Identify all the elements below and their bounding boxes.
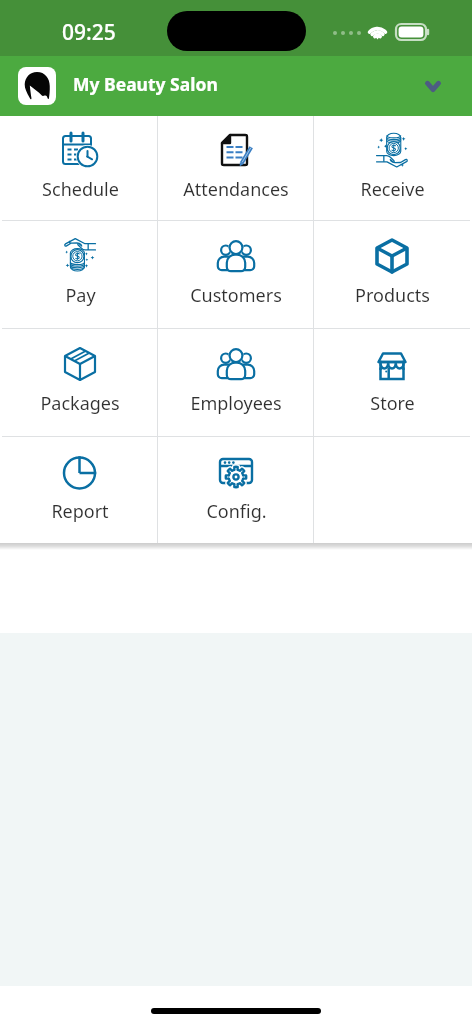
staticText: Receive [360,177,425,202]
button[interactable]: Customers [158,221,314,328]
staticText: My Beauty Salon [73,72,218,96]
staticText: Products [355,283,430,308]
button[interactable]: Expand menu [413,66,453,106]
button[interactable]: Report [2,437,158,543]
button[interactable]: Pay [2,221,158,328]
staticText: Store [370,391,415,416]
button[interactable]: Receive [314,116,470,220]
staticText: Schedule [42,177,119,202]
button[interactable]: Store [314,329,470,436]
button[interactable]: Employees [158,329,314,436]
staticText: Customers [190,283,282,308]
button[interactable]: Products [314,221,470,328]
staticText: Attendances [183,177,289,202]
button[interactable]: Schedule [2,116,158,220]
button[interactable]: Attendances [158,116,314,220]
button[interactable]: Packages [2,329,158,436]
button[interactable]: Config. [158,437,314,543]
staticText: Pay [65,283,96,308]
staticText: Report [51,499,109,524]
staticText: Config. [206,499,267,524]
staticText: Employees [190,391,282,416]
staticText: Packages [40,391,120,416]
staticText: 09:25 [62,18,116,47]
